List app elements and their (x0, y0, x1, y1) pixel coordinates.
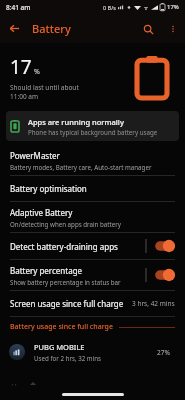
button[interactable]: More options (161, 17, 185, 41)
staticText: Battery usage since full charge (10, 322, 113, 332)
staticText: Battery percentage (10, 265, 83, 276)
staticText: Apps are running normally (28, 117, 124, 127)
button[interactable]: Detect battery-draining apps toggle (153, 239, 177, 253)
button[interactable]: Battery optimisation (0, 176, 185, 201)
staticText: 0 B/s (103, 4, 116, 11)
staticText: 8:41 am (6, 3, 31, 12)
staticText: PowerMaster (10, 150, 60, 161)
button[interactable]: Detect battery-draining apps (0, 233, 185, 259)
staticText: 17% (167, 3, 179, 11)
button[interactable]: PUBG MOBILE (0, 337, 185, 367)
staticText: Detect battery-draining apps (10, 241, 118, 252)
staticText: % (34, 67, 40, 77)
staticText: Show battery percentage in status bar (10, 278, 121, 286)
button[interactable]: Search (135, 16, 161, 42)
staticText: PUBG MOBILE (34, 342, 85, 352)
button[interactable]: PowerMaster (0, 145, 185, 175)
staticText: Should last until about (10, 83, 79, 92)
staticText: Screen usage since full charge (10, 298, 124, 309)
staticText: 27% (157, 348, 175, 357)
button[interactable]: Apps are running normally (6, 111, 179, 141)
button[interactable]: Adaptive Battery (0, 202, 185, 232)
staticText: 11:00 am (10, 92, 39, 101)
staticText: Used for 2 hrs, 32 mins (34, 354, 102, 362)
staticText: Battery (32, 21, 71, 36)
button[interactable]: Battery percentage toggle (153, 268, 177, 282)
staticText: 17 (10, 54, 32, 80)
staticText: On/detecting when apps drain battery (10, 220, 121, 228)
button[interactable]: Screen usage since full charge (0, 291, 185, 316)
staticText: Adaptive Battery (10, 207, 73, 218)
button[interactable]: Back (0, 14, 29, 43)
staticText: Battery optimisation (10, 183, 87, 194)
button[interactable]: Battery percentage (0, 260, 185, 290)
staticText: Battery modes, Battery care, Auto-start … (10, 163, 152, 171)
staticText: Phone has typical background battery usa… (28, 128, 158, 136)
staticText: 3 hrs, 42 mins (132, 299, 175, 308)
